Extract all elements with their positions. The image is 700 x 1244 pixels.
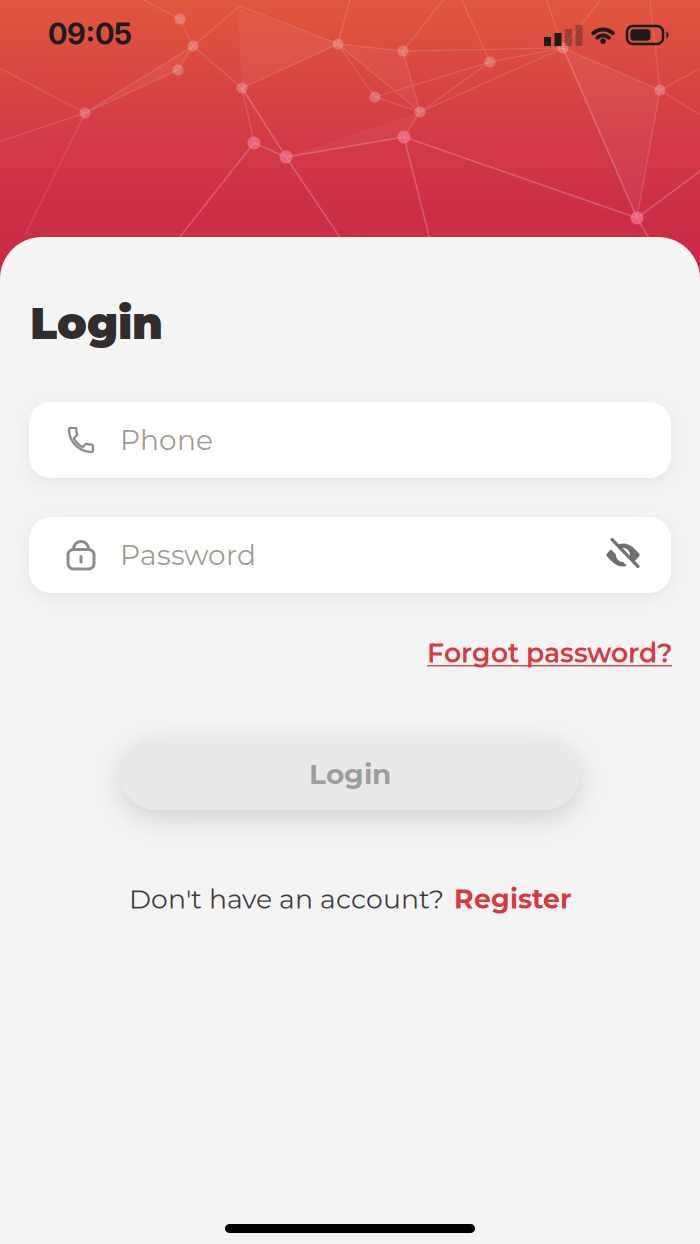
staticText: Don't have an account?	[129, 883, 444, 915]
staticText: Login	[30, 297, 163, 349]
staticText: Register	[454, 883, 571, 915]
staticText: Forgot password?	[427, 637, 672, 669]
textField[interactable]: Password	[120, 538, 550, 572]
staticText: Password	[120, 538, 256, 572]
button[interactable]: Login	[120, 738, 580, 810]
button[interactable]: Forgot password?	[427, 637, 672, 669]
staticText: Phone	[120, 423, 213, 457]
staticText: 09:05	[48, 16, 132, 51]
button[interactable]: Register	[454, 883, 571, 915]
button[interactable]: Show password	[601, 533, 645, 577]
staticText: Login	[309, 757, 391, 791]
textField[interactable]: Phone	[120, 423, 600, 457]
